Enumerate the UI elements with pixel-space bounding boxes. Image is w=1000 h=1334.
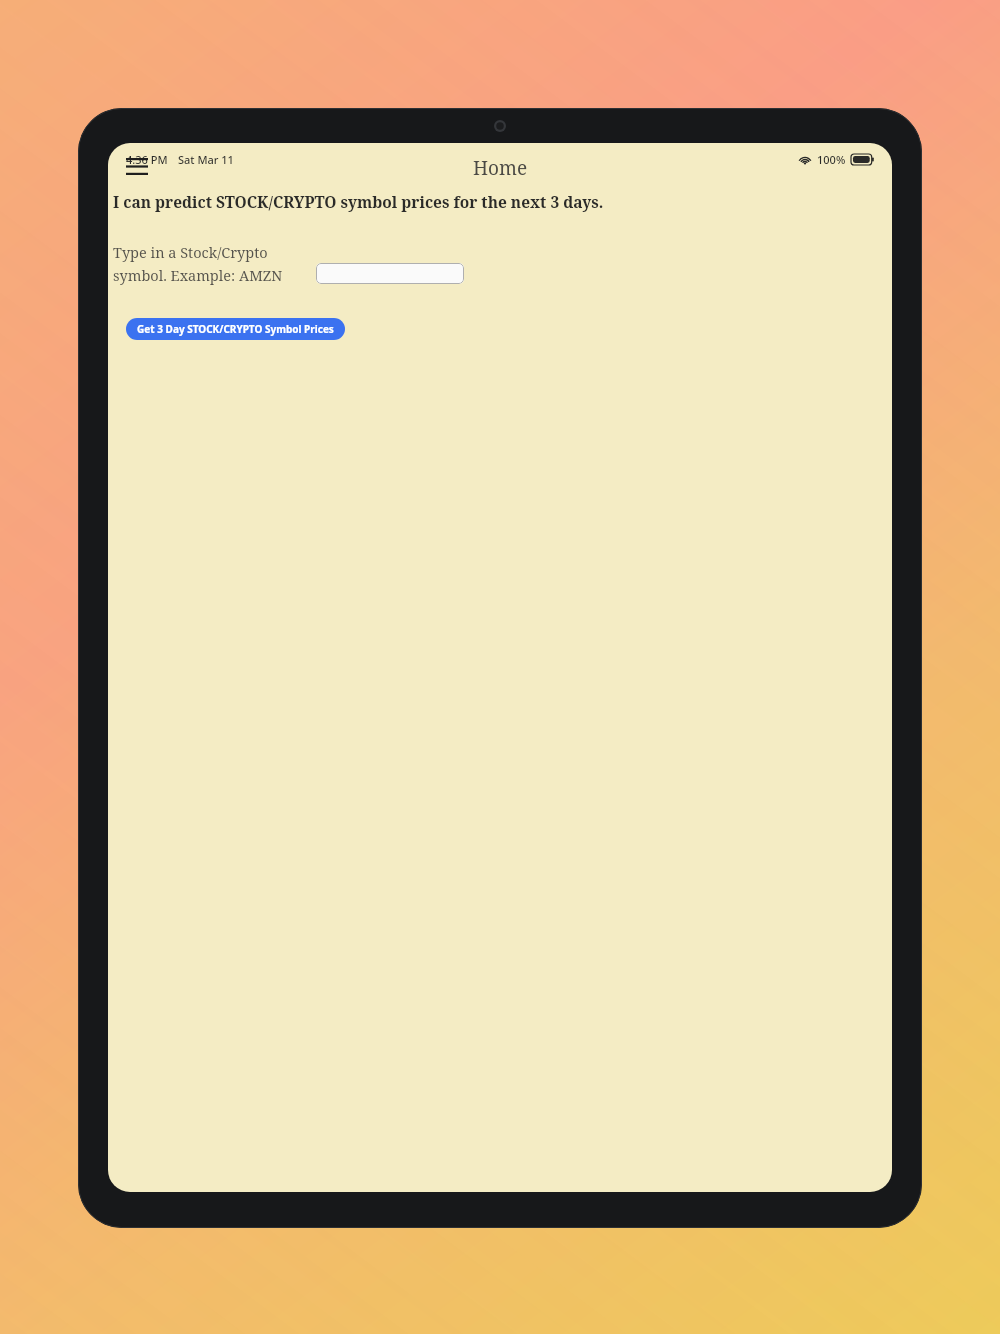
staticText: symbol. Example: AMZN: [113, 265, 283, 285]
staticText: Get 3 Day STOCK/CRYPTO Symbol Prices: [137, 322, 334, 336]
staticText: Type in a Stock/Crypto: [113, 242, 268, 262]
staticText: 4:36 PM: [126, 152, 168, 167]
staticText: Home: [473, 155, 528, 181]
staticText: 100%: [817, 152, 846, 167]
button[interactable]: Stock or crypto symbol input: [316, 263, 464, 284]
button[interactable]: Open navigation menu: [118, 149, 156, 183]
staticText: I can predict STOCK/CRYPTO symbol prices…: [113, 191, 604, 212]
button[interactable]: Get 3 Day STOCK/CRYPTO Symbol Prices: [126, 318, 345, 340]
staticText: Sat Mar 11: [178, 152, 234, 167]
